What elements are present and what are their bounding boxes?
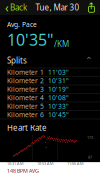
staticText: 10:31 AM — [7, 161, 24, 166]
staticText: Kilometer 3 — [7, 85, 44, 94]
staticText: 10'45" — [48, 110, 69, 119]
staticText: 10'35" — [7, 29, 54, 50]
staticText: 10'31" — [48, 76, 69, 85]
staticText: /KM — [54, 38, 69, 49]
staticText: 148 BPM AVG — [7, 167, 39, 174]
staticText: ↑ — [87, 1, 95, 11]
staticText: Kilometer 6 — [7, 110, 44, 119]
staticText: 11:06 AM — [67, 161, 84, 166]
staticText: 87 — [88, 154, 92, 160]
staticText: 10'08" — [48, 93, 69, 102]
staticText: Kilometer 2 — [7, 76, 44, 85]
staticText: Kilometer 5 — [7, 102, 44, 111]
staticText: Kilometer 1 — [7, 68, 44, 77]
staticText: Splits — [7, 55, 27, 66]
staticText: 10'19" — [48, 85, 69, 94]
button[interactable]: Splits — [0, 53, 100, 68]
staticText: Tue, Mar 30 — [35, 2, 79, 13]
staticText: Avg. Pace — [7, 20, 37, 29]
button[interactable]: Kilometer 3 — [0, 85, 100, 93]
staticText: 173 — [87, 135, 93, 140]
button[interactable]: Share — [85, 0, 98, 14]
button[interactable]: Kilometer 5 — [0, 102, 100, 110]
button[interactable]: Kilometer 6 — [0, 111, 100, 119]
button[interactable]: Kilometer 4 — [0, 94, 100, 102]
staticText: 10:53 AM — [37, 161, 54, 166]
staticText: Back — [10, 2, 27, 13]
staticText: ‹ — [5, 0, 9, 15]
staticText: ⌃ — [85, 55, 93, 66]
staticText: 10'33" — [48, 102, 69, 111]
staticText: 11'03" — [48, 68, 69, 77]
staticText: Heart Rate — [7, 122, 47, 133]
button[interactable]: ‹ — [2, 0, 30, 18]
staticText: Kilometer 4 — [7, 93, 44, 102]
button[interactable]: Kilometer 2 — [0, 77, 100, 85]
button[interactable]: Kilometer 1 — [0, 68, 100, 76]
